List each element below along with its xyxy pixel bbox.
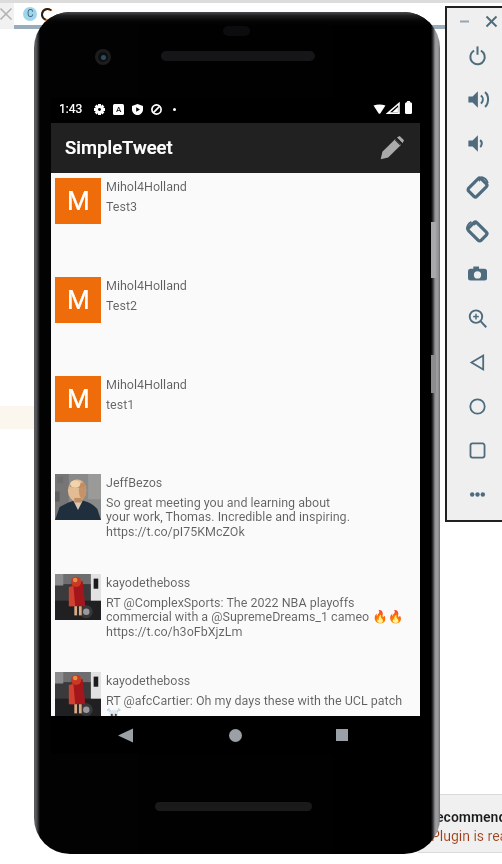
button[interactable]: Recents (325, 718, 359, 752)
button[interactable]: Power (455, 35, 499, 75)
staticText: M (67, 285, 90, 315)
staticText: JeffBezos (106, 475, 163, 490)
button[interactable]: Volume down (455, 123, 499, 163)
staticText: Mihol4Holland (106, 377, 187, 392)
staticText: Plugin is read (431, 828, 502, 844)
staticText: Mihol4Holland (106, 278, 187, 293)
button[interactable]: Screenshot (455, 254, 499, 294)
staticText: test1 (106, 397, 135, 412)
button[interactable]: Back (455, 342, 499, 382)
button[interactable]: M (51, 173, 420, 272)
staticText: SimpleTweet (65, 137, 173, 159)
staticText: A (116, 105, 122, 114)
staticText: C (27, 8, 34, 20)
staticText: So great meeting you and learning about … (106, 495, 350, 540)
staticText: M (67, 384, 90, 414)
button[interactable]: Home (218, 718, 252, 752)
button[interactable]: Overview (455, 430, 499, 470)
button[interactable]: Compose tweet (372, 128, 412, 168)
button[interactable]: Volume up (455, 79, 499, 119)
staticText: ecommende (436, 809, 502, 825)
staticText: kayodetheboss (106, 673, 191, 688)
staticText: Mihol4Holland (106, 179, 187, 194)
button[interactable]: Back (108, 718, 142, 752)
button[interactable]: M (51, 371, 420, 469)
button[interactable]: Home (455, 386, 499, 426)
button[interactable]: kayodetheboss (51, 667, 420, 727)
button[interactable]: Rotate left (455, 167, 499, 207)
staticText: RT @ComplexSports: The 2022 NBA playoffs… (106, 595, 404, 640)
staticText: RT @afcCartier: Oh my days these with th… (106, 693, 420, 727)
button[interactable]: kayodetheboss (51, 569, 420, 667)
button[interactable]: JeffBezos (51, 469, 420, 569)
staticText: Test3 (106, 199, 138, 214)
staticText: kayodetheboss (106, 575, 191, 590)
staticText: Test2 (106, 298, 138, 313)
button[interactable]: Minimize (455, 12, 474, 31)
button[interactable]: M (51, 272, 420, 371)
staticText: M (67, 186, 90, 216)
button[interactable]: Close (482, 12, 501, 31)
button[interactable]: Zoom (455, 298, 499, 338)
staticText: 1:43 (59, 102, 83, 116)
button[interactable]: Rotate right (455, 211, 499, 251)
button[interactable]: More (455, 474, 499, 514)
